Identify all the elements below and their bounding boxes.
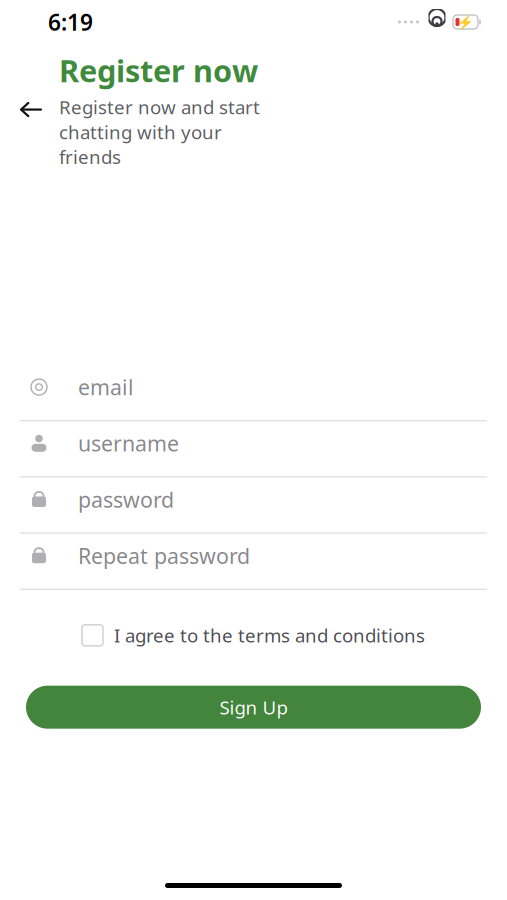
- staticText: Register now and start chatting with you…: [59, 95, 260, 169]
- button[interactable]: I agree to the terms and conditions: [76, 614, 431, 657]
- staticText: password: [78, 485, 174, 514]
- button[interactable]: Back: [0, 92, 59, 126]
- staticText: Register now: [59, 50, 258, 91]
- staticText: I agree to the terms and conditions: [114, 623, 425, 648]
- button[interactable]: email: [0, 365, 507, 421]
- staticText: Sign Up: [219, 695, 287, 720]
- button[interactable]: Repeat password: [0, 534, 507, 590]
- staticText: email: [78, 373, 134, 401]
- staticText: Repeat password: [78, 541, 250, 570]
- staticText: 6:19: [48, 7, 93, 37]
- button[interactable]: username: [0, 421, 507, 477]
- staticText: ⚡: [457, 14, 474, 30]
- button[interactable]: password: [0, 477, 507, 534]
- button[interactable]: Sign Up: [26, 686, 481, 729]
- staticText: username: [78, 429, 179, 457]
